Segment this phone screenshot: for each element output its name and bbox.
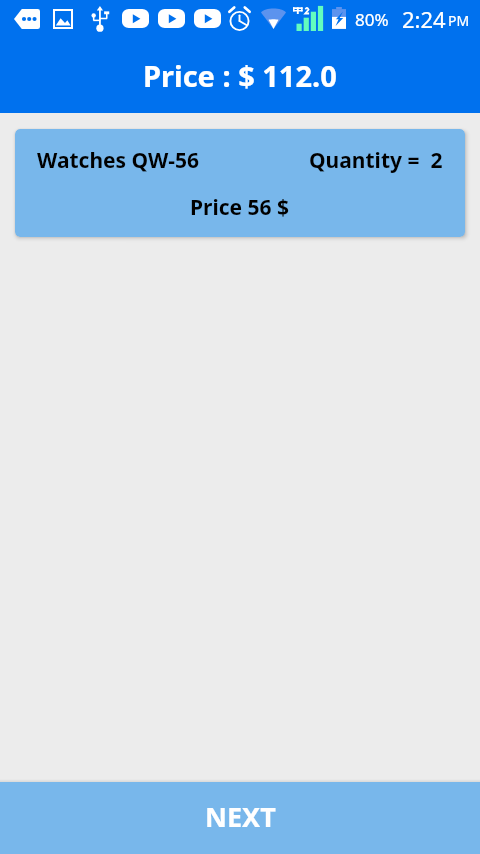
staticText: 80% [355, 8, 389, 31]
staticText: PM [448, 11, 470, 30]
button[interactable]: NEXT [0, 782, 480, 854]
staticText: Watches QW-56 [37, 146, 200, 175]
staticText: Price 56 $ [190, 193, 290, 222]
staticText: 2:24 [402, 4, 446, 34]
staticText: NEXT [205, 798, 276, 835]
staticText: Price : $ 112.0 [143, 56, 337, 95]
staticText: Quantity = 2 [309, 146, 443, 175]
button[interactable]: Watches QW-56 [15, 129, 465, 237]
